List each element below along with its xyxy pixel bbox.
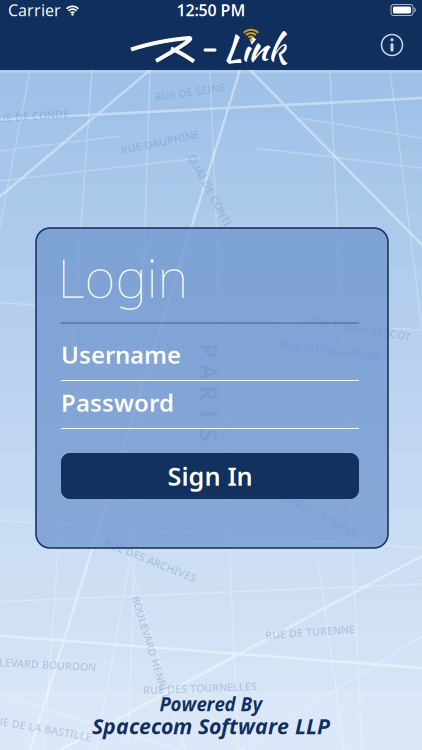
staticText: RUE PIERRE LESCOT bbox=[308, 321, 411, 335]
staticText: R bbox=[201, 377, 216, 409]
staticText: S bbox=[202, 419, 215, 451]
staticText: RUE DES TOURNELLES bbox=[143, 681, 257, 695]
staticText: P bbox=[201, 335, 216, 367]
staticText: Carrier bbox=[8, 0, 61, 21]
staticText: Sign In bbox=[167, 459, 252, 493]
staticText: Spacecom Software LLP bbox=[92, 712, 330, 740]
staticText: RUE DE SEINE bbox=[154, 85, 225, 99]
staticText: RUE DAUPHINE bbox=[120, 135, 200, 149]
staticText: RUE DE TURENNE bbox=[265, 625, 355, 639]
staticText: Password bbox=[61, 387, 174, 418]
staticText: RUE DE CONDE bbox=[0, 109, 69, 123]
staticText: I bbox=[204, 398, 213, 430]
button[interactable]: Username bbox=[61, 341, 359, 381]
button[interactable]: Password bbox=[61, 389, 359, 429]
button[interactable]: Info bbox=[376, 27, 408, 63]
staticText: BOULEVARD HENRI IV bbox=[95, 643, 208, 657]
staticText: Powered By bbox=[159, 692, 262, 716]
staticText: Login bbox=[57, 242, 188, 312]
staticText: QUAI DE CONTI bbox=[170, 183, 250, 197]
staticText: Username bbox=[61, 339, 181, 370]
staticText: RUE DE LA BASTILLE bbox=[0, 721, 92, 735]
staticText: Link bbox=[223, 22, 286, 74]
staticText: BOULEVARD BOURDON bbox=[0, 657, 96, 671]
staticText: RUE DES ARCHIVES bbox=[100, 553, 199, 567]
staticText: A bbox=[201, 356, 217, 388]
staticText: 12:50 PM bbox=[176, 0, 245, 21]
button[interactable]: Sign In bbox=[61, 453, 359, 499]
